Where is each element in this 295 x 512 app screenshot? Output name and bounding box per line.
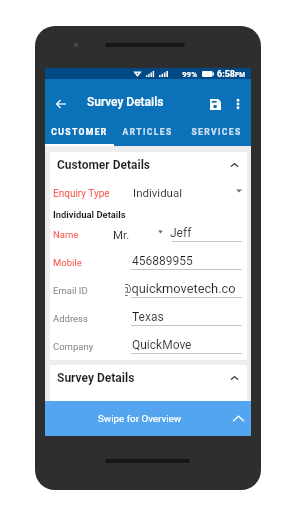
staticText: Jeff [170,226,192,240]
staticText: Email ID [53,285,88,296]
staticText: Address [53,313,88,324]
staticText: Enquiry Type [53,188,110,200]
staticText: Mr. [113,228,130,241]
staticText: QuickMove [132,338,192,352]
staticText: SERVICES [191,127,242,137]
button[interactable]: Enquiry Type [50,178,247,206]
button[interactable]: Back [46,89,76,119]
button[interactable]: Swipe for Overview [45,401,251,436]
staticText: Survey Details [87,95,164,109]
staticText: Individual Details [53,209,126,220]
staticText: 6:58 [217,69,236,80]
staticText: CUSTOMER [51,127,108,137]
staticText: Mobile [53,257,82,268]
staticText: Individual [133,186,183,199]
button[interactable]: Customer Details [50,152,247,178]
button[interactable]: Name [50,220,247,248]
staticText: 99% [182,70,198,79]
button[interactable]: CUSTOMER [45,118,113,146]
staticText: Customer Details [57,158,150,172]
button[interactable]: SERVICES [182,118,251,146]
staticText: Texas [132,310,164,324]
staticText: 456889955 [132,254,193,268]
button[interactable]: Save [200,89,230,119]
staticText: Company [53,341,94,352]
button[interactable]: More options [226,89,250,119]
staticText: PM [235,71,245,79]
button[interactable]: Company [50,332,247,360]
staticText: Swipe for Overview [98,413,182,424]
button[interactable]: Address [50,304,247,332]
button[interactable]: ARTICLES [113,118,182,146]
button[interactable]: Survey Details [50,365,247,391]
staticText: ARTICLES [122,127,173,137]
button[interactable]: Email ID [50,276,247,304]
staticText: Name [53,229,79,240]
staticText: @quickmovetech.com [125,281,245,296]
staticText: Survey Details [57,371,135,385]
button[interactable]: Mobile [50,248,247,276]
